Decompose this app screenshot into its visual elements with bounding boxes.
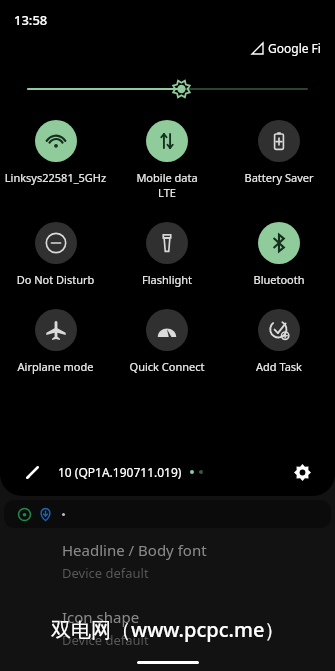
button[interactable]	[4, 500, 331, 528]
staticText: Battery Saver	[227, 170, 331, 185]
staticText: Flashlight	[115, 272, 219, 287]
staticText: 10 (QP1A.190711.019)	[58, 464, 182, 480]
button[interactable]: Add Task	[223, 309, 335, 374]
button[interactable]: Linksys22581_5GHz	[0, 120, 111, 185]
staticText: 双电网（www.pcpc.me）	[51, 616, 285, 643]
staticText: Add Task	[227, 359, 331, 374]
staticText: Linksys22581_5GHz	[4, 170, 107, 185]
staticText: Icon shape	[62, 607, 140, 627]
staticText: Airplane mode	[4, 359, 107, 374]
staticText: 13:58	[14, 11, 48, 29]
staticText: Device default	[62, 564, 149, 582]
button[interactable]: Edit tiles	[18, 458, 46, 486]
staticText: LTE	[115, 185, 219, 200]
button[interactable]: Quick Connect	[111, 309, 223, 374]
button[interactable]: Settings	[287, 457, 317, 487]
staticText: Do Not Disturb	[4, 272, 107, 287]
staticText: Device default	[62, 631, 149, 649]
staticText: Mobile data	[115, 170, 219, 185]
staticText: Headline / Body font	[62, 540, 207, 560]
staticText: Quick Connect	[115, 359, 219, 374]
button[interactable]: Bluetooth	[223, 222, 335, 287]
button[interactable]: Flashlight	[111, 222, 223, 287]
button[interactable]: Do Not Disturb	[0, 222, 111, 287]
button[interactable]: Mobile data	[111, 120, 223, 200]
button[interactable]: Brightness	[28, 80, 307, 98]
button[interactable]: Airplane mode	[0, 309, 111, 374]
staticText: Google Fi	[268, 40, 321, 56]
staticText: Bluetooth	[227, 272, 331, 287]
button[interactable]: Battery Saver	[223, 120, 335, 185]
